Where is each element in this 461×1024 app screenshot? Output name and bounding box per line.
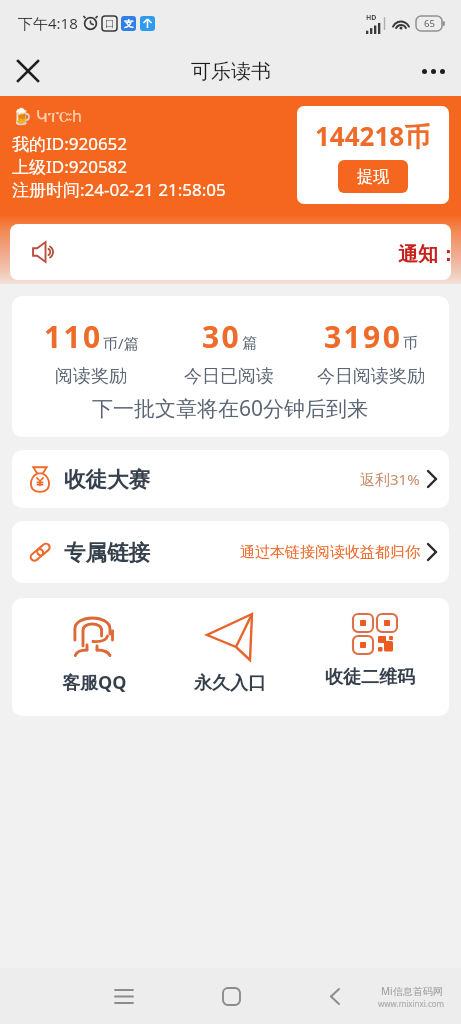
button[interactable]: 144218币 <box>297 106 449 204</box>
staticText: 110 <box>44 316 103 357</box>
button[interactable]: 返回 <box>311 972 359 1020</box>
button[interactable]: 关闭 <box>8 51 48 91</box>
staticText: 30 <box>202 316 242 357</box>
staticText: 支 <box>124 18 134 30</box>
staticText: 提现 <box>357 167 389 187</box>
staticText: 客服QQ <box>62 670 127 695</box>
staticText: 专属链接 <box>64 539 150 566</box>
button[interactable]: 提现 <box>338 160 408 193</box>
staticText: 🍺 ԿፐᏨh <box>12 105 82 127</box>
staticText: www.mixinxi.com <box>378 998 445 1009</box>
staticText: 今日已阅读 <box>184 365 274 388</box>
button[interactable]: 收徒大赛 <box>12 450 449 508</box>
staticText: 通过本链接阅读收益都归你 <box>240 543 420 562</box>
staticText: 返利31% <box>360 469 420 489</box>
staticText: 可乐读书 <box>191 59 271 84</box>
staticText: 下一批文章将在60分钟后到来 <box>92 394 369 423</box>
staticText: Mi信息首码网 <box>381 984 443 998</box>
button[interactable]: 更多选项 <box>413 51 453 91</box>
staticText: 篇 <box>242 334 257 353</box>
staticText: 囗 <box>105 18 114 29</box>
staticText: 下午4:18 <box>18 13 78 33</box>
button[interactable]: 专属链接 <box>12 521 449 583</box>
button[interactable]: 最近任务 <box>100 972 148 1020</box>
button[interactable]: 主屏幕 <box>207 972 255 1020</box>
staticText: 阅读奖励 <box>55 365 127 388</box>
staticText: 永久入口 <box>194 672 266 695</box>
button[interactable]: 收徒二维码 <box>308 598 432 689</box>
button[interactable]: 永久入口 <box>168 598 292 695</box>
staticText: HD <box>366 13 377 23</box>
staticText: 币 <box>403 334 418 353</box>
staticText: 144218币 <box>315 118 431 154</box>
button[interactable]: 通知：2021年11月 <box>10 224 451 280</box>
staticText: 上级ID:920582 <box>12 155 128 178</box>
staticText: 注册时间:24-02-21 21:58:05 <box>12 178 226 201</box>
staticText: 65 <box>424 17 435 30</box>
staticText: 收徒二维码 <box>325 666 415 689</box>
button[interactable]: 客服QQ <box>32 598 156 695</box>
staticText: 今日阅读奖励 <box>317 365 425 388</box>
staticText: 币/篇 <box>103 333 139 353</box>
staticText: 我的ID:920652 <box>12 132 128 155</box>
staticText: 收徒大赛 <box>64 466 150 493</box>
staticText: 通知：2021年11月 <box>398 240 451 267</box>
staticText: 3190 <box>324 316 403 357</box>
